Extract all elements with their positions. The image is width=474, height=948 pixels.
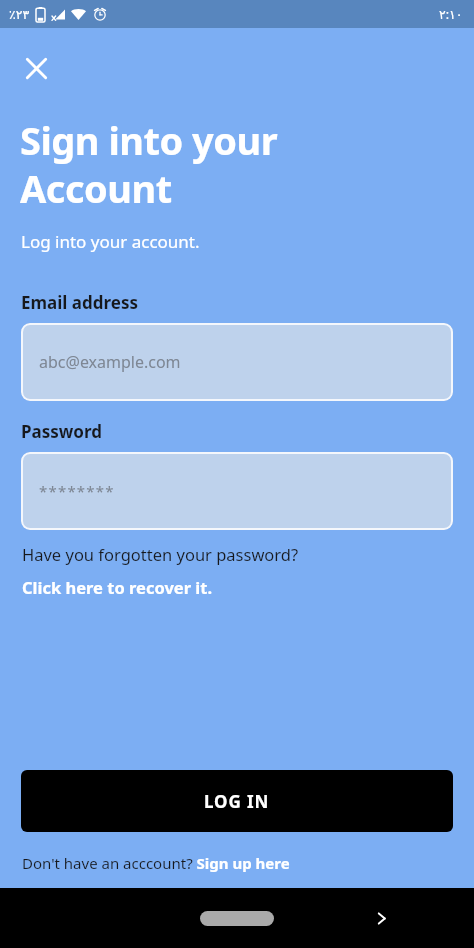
staticText: LOG IN xyxy=(204,790,270,813)
staticText: ٪٢٣ xyxy=(9,7,30,22)
staticText: Sign into your Account xyxy=(20,114,278,214)
button[interactable]: Close xyxy=(12,44,60,92)
button[interactable]: Don't have an acccount? Sign up here xyxy=(22,853,290,873)
staticText: Password xyxy=(21,420,102,443)
button[interactable]: Click here to recover it. xyxy=(22,576,213,598)
staticText: ٢:١٠ xyxy=(439,6,463,23)
staticText: ******** xyxy=(39,481,115,501)
staticText: Click here to recover it. xyxy=(22,576,213,598)
button[interactable]: Home xyxy=(200,911,274,926)
staticText: Have you forgotten your password? xyxy=(22,543,299,565)
button[interactable]: abc@example.com xyxy=(21,323,453,401)
button[interactable]: Switch input method xyxy=(364,901,398,935)
staticText: abc@example.com xyxy=(39,351,181,373)
button[interactable]: ******** xyxy=(21,452,453,530)
button[interactable]: LOG IN xyxy=(21,770,453,832)
staticText: Log into your account. xyxy=(21,230,200,253)
staticText: Email address xyxy=(21,291,138,314)
staticText: Don't have an acccount? Sign up here xyxy=(22,853,290,873)
